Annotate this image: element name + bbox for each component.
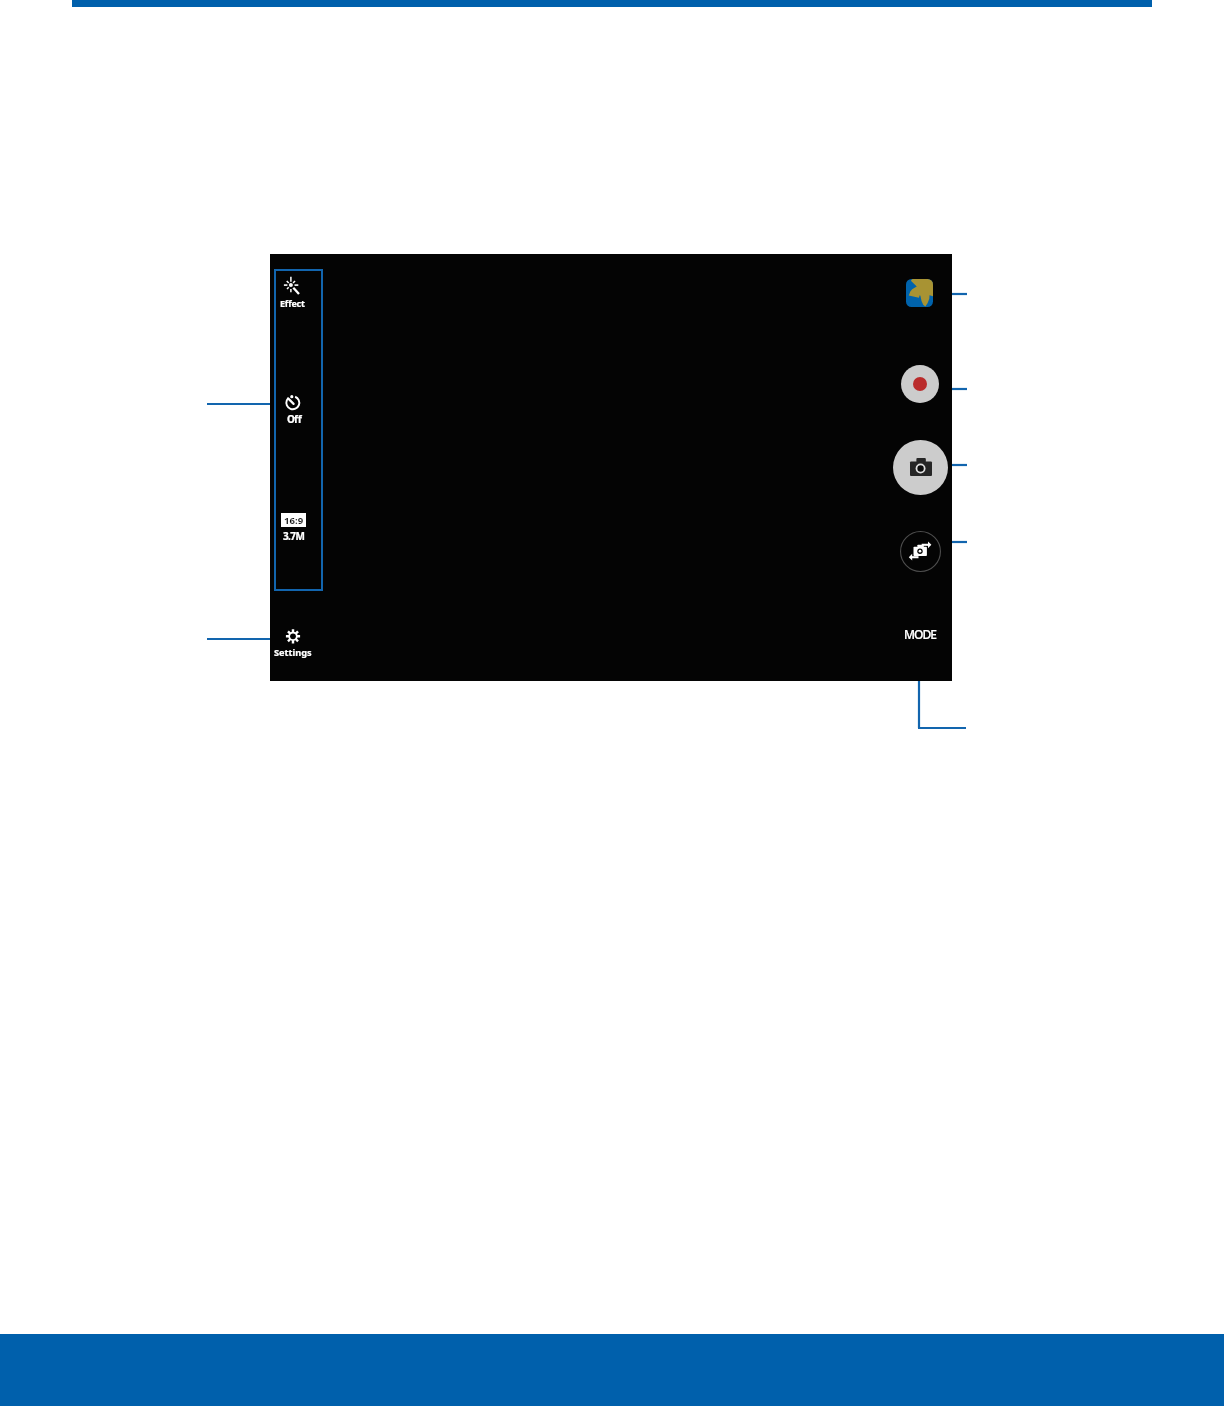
- button[interactable]: Settings: [274, 624, 313, 659]
- staticText: Settings: [274, 646, 312, 659]
- staticText: Off: [287, 412, 302, 426]
- staticText: Effect: [280, 297, 305, 309]
- staticText: 3.7M: [283, 529, 305, 543]
- button[interactable]: Take picture: [893, 440, 948, 495]
- button[interactable]: Switch camera: [900, 531, 941, 572]
- button[interactable]: Off: [281, 389, 305, 424]
- staticText: 16:9: [284, 514, 304, 527]
- staticText: MODE: [904, 626, 936, 642]
- button[interactable]: MODE: [899, 621, 941, 645]
- button[interactable]: 16:9: [281, 513, 306, 541]
- button[interactable]: Effect: [276, 273, 308, 308]
- button[interactable]: Record video: [901, 365, 939, 403]
- button[interactable]: Gallery: [906, 279, 933, 307]
